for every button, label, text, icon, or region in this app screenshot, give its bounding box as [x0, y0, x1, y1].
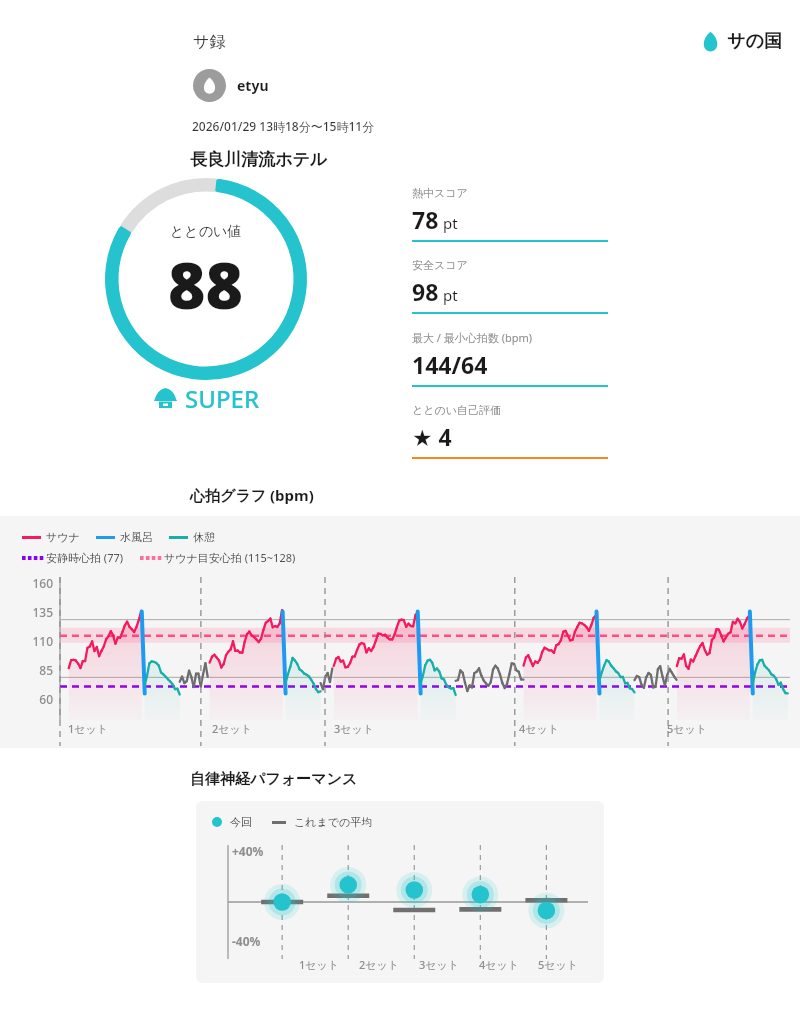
staticText: 78	[412, 204, 439, 235]
staticText: サウナ	[46, 530, 80, 544]
staticText: 98	[412, 276, 439, 307]
button[interactable]: サウナ目安心拍 (115~128)	[140, 550, 296, 565]
staticText: 1セット	[299, 957, 340, 972]
staticText: 60	[22, 691, 53, 707]
staticText: 2セット	[212, 721, 253, 736]
staticText: 今回	[230, 815, 252, 829]
staticText: pt	[439, 285, 458, 305]
button[interactable]: SUPER	[153, 382, 260, 415]
staticText: サウナ目安心拍 (115~128)	[164, 550, 296, 565]
button[interactable]: etyu	[193, 69, 269, 102]
button[interactable]: サウナ	[22, 530, 80, 544]
button[interactable]: 休憩	[169, 530, 215, 544]
staticText: 安静時心拍 (77)	[46, 550, 124, 565]
staticText: ととのい値	[170, 223, 242, 241]
button[interactable]: 安全スコア	[412, 258, 608, 330]
staticText: -40%	[232, 933, 261, 949]
staticText: 2セット	[359, 957, 400, 972]
staticText: 110	[22, 633, 53, 649]
staticText: 88	[168, 241, 244, 328]
button[interactable]: サの国 ホーム	[699, 30, 782, 53]
button[interactable]: これまでの平均	[272, 815, 373, 829]
staticText: 3セット	[334, 721, 375, 736]
staticText: サ録	[193, 32, 226, 52]
staticText: ととのい自己評価	[412, 403, 502, 417]
button[interactable]: ととのい自己評価	[412, 403, 608, 475]
button[interactable]: 今回	[212, 815, 252, 829]
staticText: 4セット	[519, 721, 560, 736]
staticText: 160	[22, 575, 53, 591]
staticText: 3セット	[419, 957, 460, 972]
staticText: 水風呂	[120, 530, 153, 544]
staticText: サの国	[727, 30, 782, 53]
staticText: pt	[439, 213, 458, 233]
button[interactable]: 熱中スコア	[412, 186, 608, 258]
staticText: 休憩	[193, 530, 215, 544]
staticText: 2026/01/29 13時18分〜15時11分	[192, 118, 375, 134]
staticText: これまでの平均	[294, 815, 373, 829]
staticText: 4セット	[479, 957, 520, 972]
staticText: 安全スコア	[412, 258, 468, 272]
staticText: SUPER	[185, 382, 260, 415]
staticText: etyu	[237, 76, 269, 95]
staticText: +40%	[232, 843, 264, 859]
staticText: 5セット	[667, 721, 708, 736]
staticText: 1セット	[68, 721, 109, 736]
staticText: 5セット	[538, 957, 579, 972]
button[interactable]: 最大 / 最小心拍数 (bpm)	[412, 330, 608, 403]
staticText: ★ 4	[412, 421, 452, 452]
staticText: 熱中スコア	[412, 186, 468, 200]
staticText: 自律神経パフォーマンス	[190, 770, 800, 789]
staticText: 心拍グラフ (bpm)	[190, 485, 800, 505]
staticText: 144/64	[412, 349, 488, 380]
staticText: 135	[22, 604, 53, 620]
staticText: 最大 / 最小心拍数 (bpm)	[412, 330, 533, 345]
staticText: 85	[22, 662, 53, 678]
button[interactable]: 水風呂	[96, 530, 153, 544]
staticText: 長良川清流ホテル	[190, 149, 328, 170]
button[interactable]: 安静時心拍 (77)	[22, 550, 124, 565]
